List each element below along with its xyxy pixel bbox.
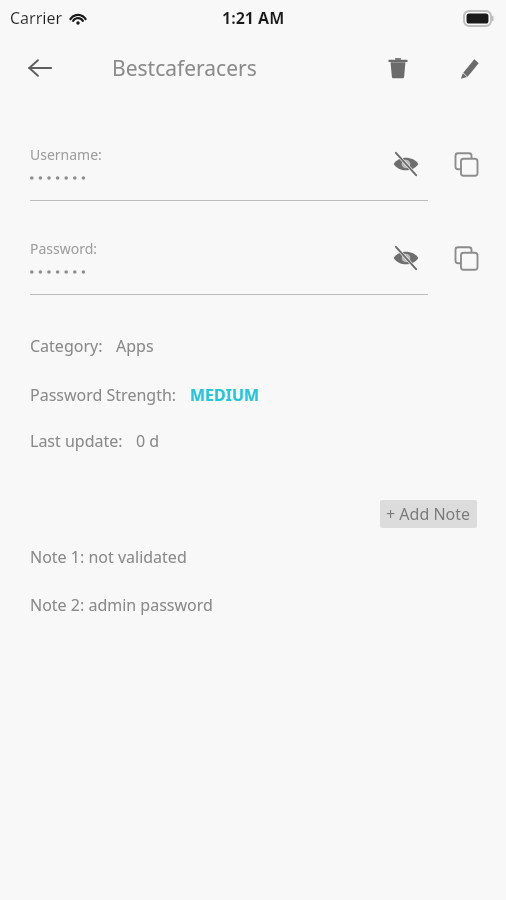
button[interactable]: Show Password: (382, 234, 430, 282)
button[interactable]: Back (16, 44, 64, 92)
button[interactable]: Edit (446, 44, 494, 92)
staticText: 0 d (136, 430, 160, 452)
staticText: Note 1: not validated (30, 546, 187, 568)
staticText: Username: (30, 145, 102, 164)
staticText: Password Strength: (30, 384, 177, 406)
button[interactable]: Note 2: admin password (0, 592, 506, 618)
staticText: Password: (30, 239, 98, 258)
staticText: + Add Note (386, 503, 471, 525)
staticText: Bestcaferacers (112, 54, 257, 83)
staticText: Last update: (30, 430, 123, 452)
staticText: 1:21 AM (222, 7, 285, 29)
button[interactable]: Note 1: not validated (0, 544, 506, 570)
button[interactable]: Copy Password: (444, 236, 488, 280)
button[interactable]: Show Username: (382, 140, 430, 188)
staticText: Note 2: admin password (30, 594, 213, 616)
button[interactable]: + Add Note (380, 500, 477, 528)
staticText: Apps (116, 335, 154, 357)
staticText: Category: (30, 335, 103, 357)
button[interactable]: Delete (374, 44, 422, 92)
staticText: Carrier (10, 7, 63, 29)
staticText: MEDIUM (190, 384, 260, 406)
button[interactable]: Copy Username: (444, 142, 488, 186)
